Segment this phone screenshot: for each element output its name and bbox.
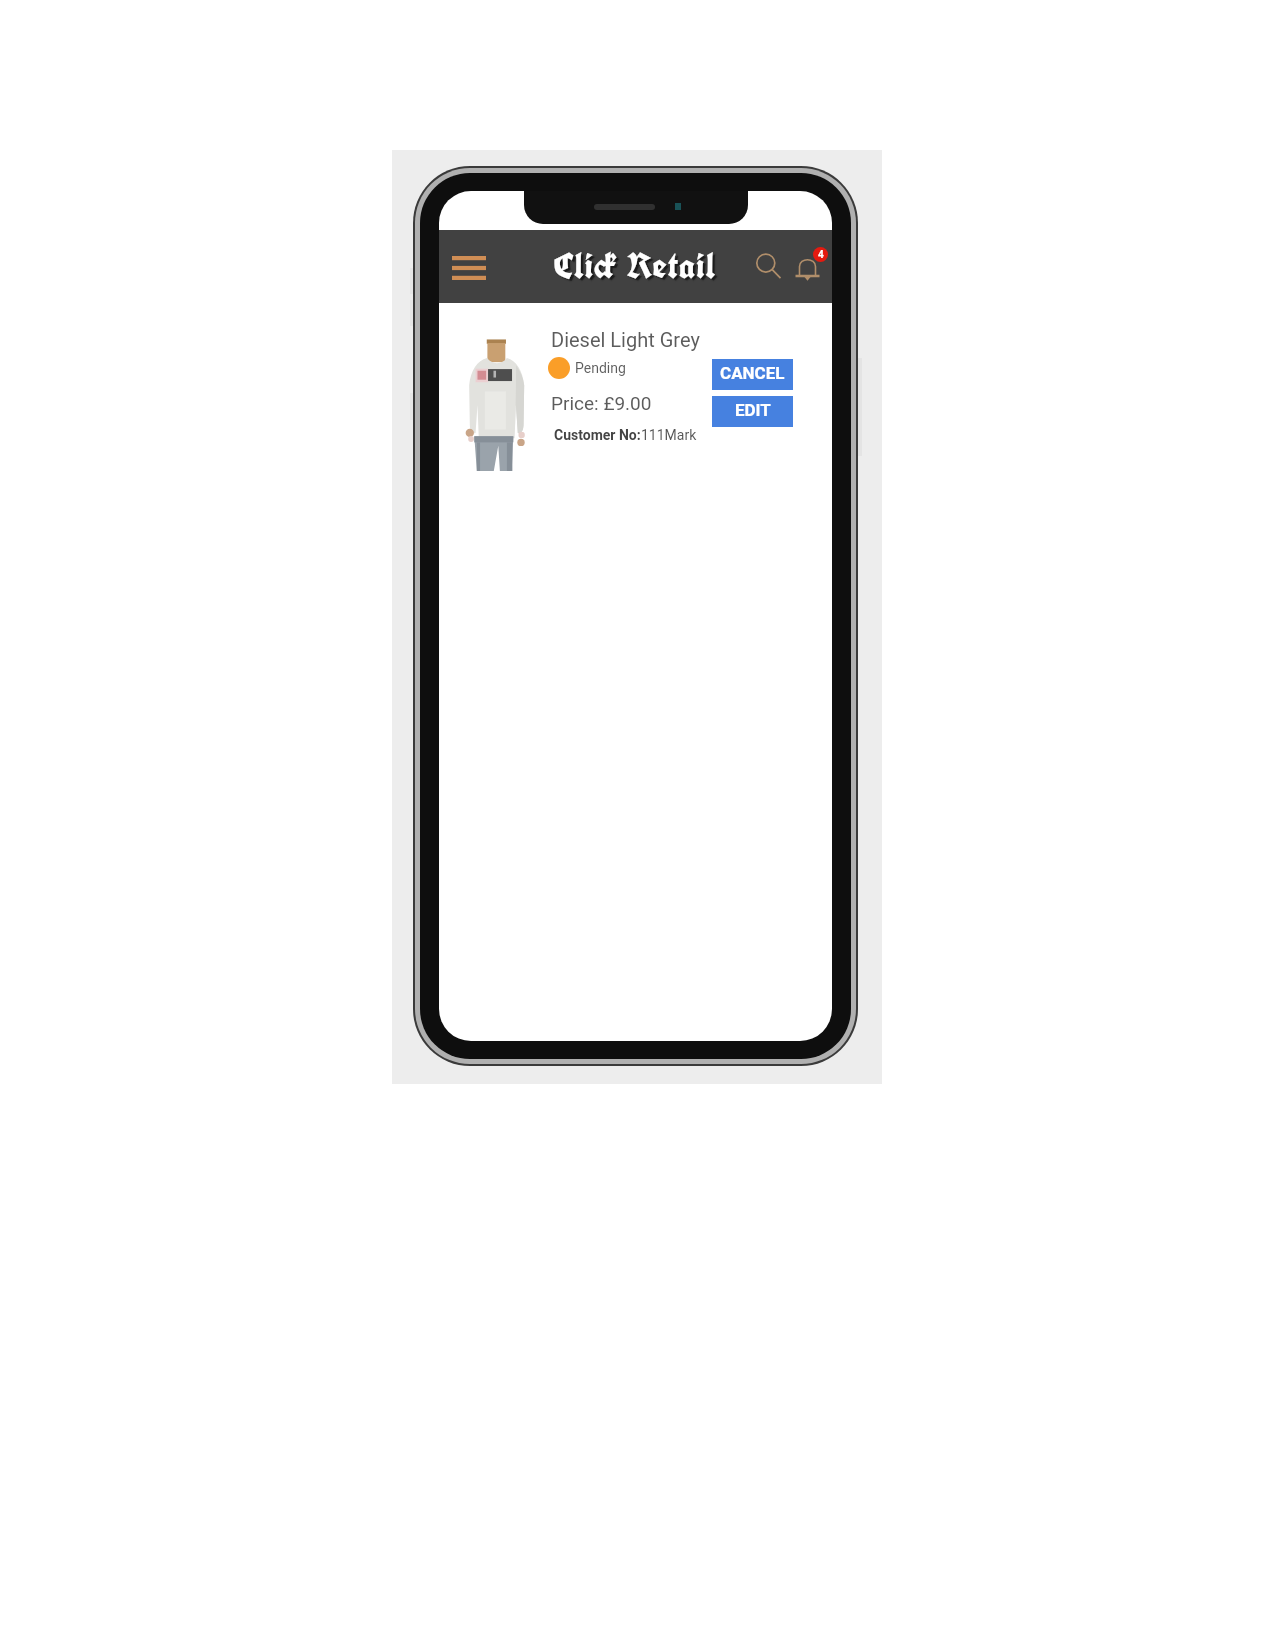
staticText: Price: £9.00 <box>551 392 652 414</box>
staticText: CANCEL <box>720 363 785 383</box>
button[interactable]: Diesel Light Grey product photo <box>439 303 832 478</box>
staticText: 4 <box>818 249 824 261</box>
staticText: Pending <box>575 360 626 376</box>
staticText: 111Mark <box>641 427 697 443</box>
staticText: Customer No: <box>554 427 641 443</box>
button[interactable]: Search <box>749 245 791 289</box>
staticText: Diesel Light Grey <box>551 328 700 351</box>
button[interactable]: Notifications, 4 unread <box>787 245 831 289</box>
button[interactable]: CANCEL <box>712 359 793 390</box>
button[interactable]: Diesel Light Grey product photo <box>465 337 529 473</box>
staticText: EDIT <box>735 400 771 420</box>
staticText: Click Retail <box>554 242 717 289</box>
button[interactable]: Open navigation menu <box>446 242 492 292</box>
button[interactable]: EDIT <box>712 396 793 427</box>
